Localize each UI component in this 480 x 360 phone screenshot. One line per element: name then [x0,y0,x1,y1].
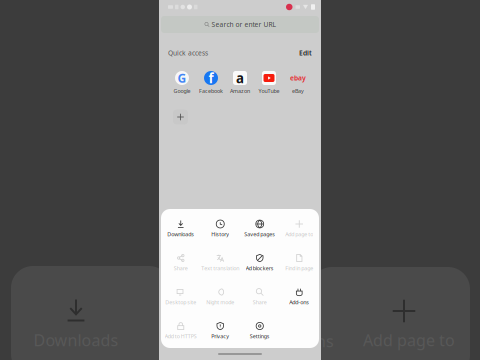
button[interactable]: Downloads [161,213,200,247]
staticText: ns [316,330,334,352]
staticText: Share [174,265,188,272]
staticText: Quick access [168,49,208,57]
staticText: Downloads [167,231,194,238]
staticText: Edit [299,49,312,57]
button[interactable]: History [200,213,240,247]
button[interactable]: Share [161,247,200,281]
staticText: Night mode [206,299,234,306]
staticText: eBay [292,87,304,95]
staticText: a [236,69,244,87]
staticText: Add to HTTPS [165,333,197,340]
button[interactable]: Text translation [200,247,240,281]
staticText: G [177,70,186,86]
staticText: f [208,69,213,87]
staticText: Add page to [363,329,455,351]
staticText: Find in page [285,265,313,272]
button[interactable]: Settings [240,315,279,349]
button[interactable]: f [196,70,225,94]
staticText: Settings [250,333,270,340]
button[interactable]: Night mode [200,281,240,315]
button[interactable]: YouTube [254,70,283,94]
staticText: History [211,231,229,238]
staticText: Add page to [285,231,313,238]
staticText: Desktop site [165,299,196,306]
button[interactable]: ebay [283,70,312,94]
staticText: ebay [290,74,306,82]
staticText: YouTube [258,87,279,95]
button[interactable]: a [225,70,254,94]
button[interactable]: Add to HTTPS [161,315,200,349]
button[interactable]: Desktop site [161,281,200,315]
button[interactable]: Share [240,281,279,315]
staticText: Add-ons [289,299,309,306]
button[interactable]: Search or enter URL [161,16,319,33]
button[interactable]: Add page to [279,213,319,247]
button[interactable]: G [167,70,196,94]
button[interactable]: Ad blockers [240,247,279,281]
button[interactable]: Find in page [279,247,319,281]
button[interactable]: Edit [299,49,312,57]
staticText: Amazon [230,87,250,95]
staticText: Text translation [201,265,239,272]
button[interactable]: Add-ons [279,281,319,315]
staticText: Privacy [211,333,229,340]
button[interactable]: Privacy [200,315,240,349]
staticText: Share [253,299,267,306]
staticText: Google [173,87,190,95]
staticText: Search or enter URL [211,20,275,29]
button[interactable]: Saved pages [240,213,279,247]
staticText: Facebook [199,87,223,95]
staticText: Ad blockers [246,265,274,272]
button[interactable]: Add quick access site [168,108,193,126]
staticText: Saved pages [244,231,275,238]
staticText: Downloads [33,329,118,351]
